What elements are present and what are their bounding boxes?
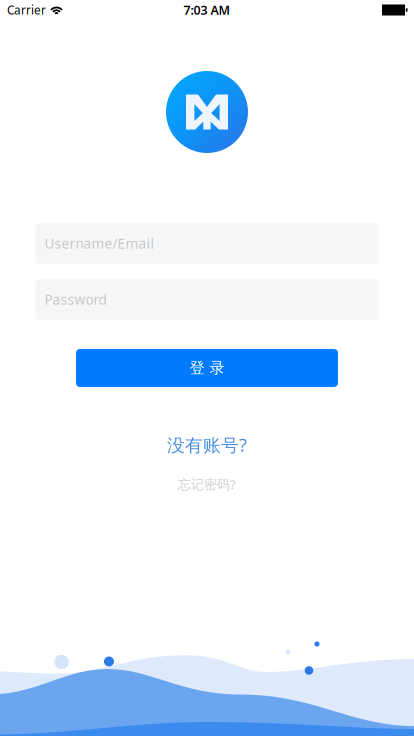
staticText: 7:03 AM bbox=[183, 2, 230, 18]
staticText: 忘记密码? bbox=[178, 475, 236, 493]
staticText: 没有账号? bbox=[167, 433, 247, 457]
button[interactable]: Password bbox=[35, 279, 378, 320]
staticText: Carrier bbox=[7, 2, 46, 18]
staticText: Username/Email bbox=[44, 234, 154, 253]
button[interactable]: 忘记密码? bbox=[178, 475, 236, 493]
button[interactable]: 登 录 bbox=[76, 349, 338, 387]
staticText: Password bbox=[44, 290, 106, 309]
staticText: 登 录 bbox=[189, 358, 224, 378]
button[interactable]: 没有账号? bbox=[167, 433, 247, 457]
button[interactable]: Username/Email bbox=[35, 223, 378, 264]
